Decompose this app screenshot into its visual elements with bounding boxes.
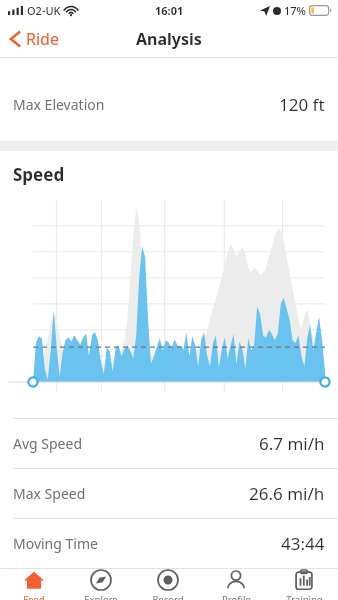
- button[interactable]: Avg Speed: [0, 419, 338, 468]
- button[interactable]: Feed: [0, 569, 67, 600]
- staticText: O2-UK: [27, 3, 61, 18]
- staticText: 16:01: [155, 3, 184, 18]
- staticText: 43:44: [281, 532, 325, 555]
- staticText: 6.7 mi/h: [259, 432, 325, 455]
- staticText: Speed: [13, 163, 65, 186]
- button[interactable]: Ride: [0, 22, 71, 56]
- staticText: 26.6 mi/h: [249, 482, 325, 505]
- staticText: Max Elevation: [13, 95, 105, 114]
- staticText: Max Speed: [13, 484, 86, 503]
- staticText: 17%: [284, 3, 306, 18]
- button[interactable]: Explore: [67, 569, 134, 600]
- staticText: Moving Time: [13, 534, 98, 553]
- staticText: Feed: [23, 593, 45, 600]
- button[interactable]: Moving Time: [0, 519, 338, 568]
- staticText: 120 ft: [279, 93, 325, 116]
- button[interactable]: Record: [134, 569, 202, 600]
- staticText: Ride: [26, 28, 59, 50]
- staticText: Profile: [222, 593, 251, 600]
- staticText: Training: [286, 593, 323, 600]
- button[interactable]: Max Speed: [0, 469, 338, 518]
- button[interactable]: Max Elevation: [0, 80, 338, 129]
- staticText: Record: [152, 593, 184, 600]
- staticText: Explore: [84, 593, 118, 600]
- button[interactable]: Profile: [202, 569, 270, 600]
- staticText: Avg Speed: [13, 434, 83, 453]
- button[interactable]: Training: [270, 569, 338, 600]
- staticText: Analysis: [136, 28, 202, 50]
